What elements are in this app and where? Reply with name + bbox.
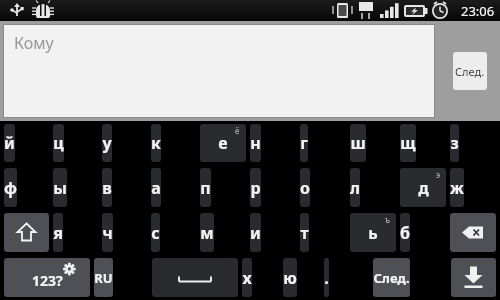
button[interactable]: ш [350,124,366,162]
button[interactable]: я [53,213,63,252]
staticText: е [218,132,228,154]
staticText: й [4,132,15,154]
button[interactable]: . [324,258,329,297]
button[interactable]: г [300,124,308,162]
button[interactable]: ж [450,168,464,207]
staticText: у [102,132,112,154]
button[interactable]: RU [94,258,113,297]
staticText: л [350,177,360,199]
button[interactable]: Hide keyboard [451,258,496,297]
button[interactable]: ц [53,124,64,162]
button[interactable]: з [450,124,459,162]
button[interactable]: п [200,168,211,207]
staticText: ы [53,177,67,199]
button[interactable]: к [151,124,161,162]
button[interactable]: б [400,213,410,252]
button[interactable]: у [102,124,112,162]
staticText: ш [350,132,366,154]
staticText: п [200,177,211,199]
staticText: ц [53,132,64,154]
staticText: ф [4,177,17,199]
staticText: ю [283,267,297,289]
staticText: т [300,222,309,244]
staticText: к [151,132,161,154]
button[interactable]: ф [4,168,17,207]
staticText: ъ [385,214,390,225]
button[interactable]: р [250,168,261,207]
button[interactable]: е [200,124,246,162]
staticText: и [250,222,261,244]
button[interactable]: в [102,168,112,207]
staticText: д [418,177,429,199]
button[interactable]: След. [453,52,487,90]
staticText: б [400,222,410,244]
staticText: о [300,177,310,199]
staticText: RU [94,269,113,287]
staticText: я [53,222,63,244]
staticText: р [250,177,261,199]
button[interactable]: щ [400,124,416,162]
button[interactable]: м [200,213,214,252]
staticText: 123? [32,271,63,290]
button[interactable]: й [4,124,15,162]
staticText: а [151,177,161,199]
staticText: в [102,177,112,199]
staticText: н [250,132,261,154]
button[interactable]: с [151,213,160,252]
staticText: э [436,169,440,180]
staticText: ч [102,222,113,244]
button[interactable]: д [400,168,446,207]
staticText: След. [373,269,410,287]
staticText: ь [368,222,378,244]
staticText: м [200,222,214,244]
button[interactable]: ю [283,258,297,297]
button[interactable]: Backspace [450,213,496,252]
button[interactable]: н [250,124,261,162]
button[interactable]: ы [53,168,67,207]
staticText: ё [235,125,240,136]
staticText: г [300,132,308,154]
staticText: х [242,267,252,289]
staticText: щ [400,132,416,154]
button[interactable]: и [250,213,261,252]
staticText: . [324,267,329,289]
button[interactable]: о [300,168,310,207]
button[interactable]: т [300,213,309,252]
button[interactable]: След. [373,258,410,297]
staticText: След. [455,64,485,79]
staticText: ж [450,177,464,199]
staticText: Кому [14,32,54,54]
staticText: с [151,222,160,244]
button[interactable]: х [242,258,252,297]
button[interactable]: Space [152,258,238,297]
button[interactable]: а [151,168,161,207]
button[interactable]: ч [102,213,113,252]
button[interactable]: Shift [4,213,49,252]
button[interactable]: Кому [4,25,434,117]
staticText: з [450,132,459,154]
staticText: 23:06 [461,2,495,20]
button[interactable]: л [350,168,360,207]
button[interactable]: 123? [4,258,90,297]
button[interactable]: ь [350,213,396,252]
